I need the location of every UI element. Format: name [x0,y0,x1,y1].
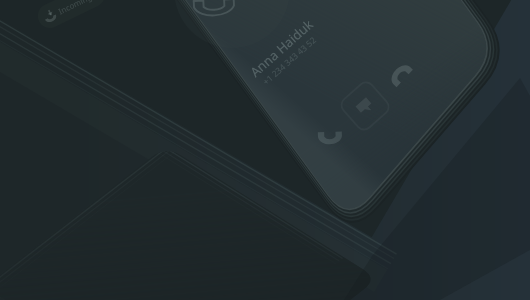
button[interactable]: Incoming call from Anna Haiduk [0,0,530,300]
